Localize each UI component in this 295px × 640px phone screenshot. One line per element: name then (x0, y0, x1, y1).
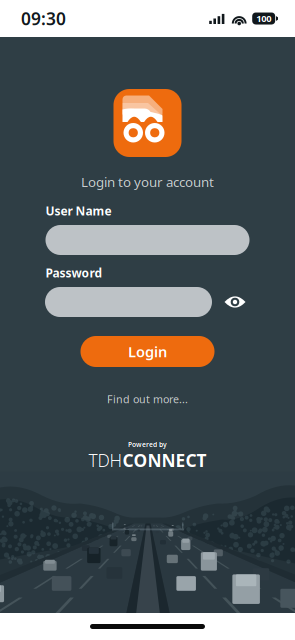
staticText: TDH (88, 449, 122, 472)
staticText: Password (45, 265, 102, 281)
staticText: Find out more... (107, 392, 188, 406)
staticText: 09:30 (21, 7, 66, 30)
button[interactable]: Login (80, 336, 214, 367)
button[interactable]: Find out more... (107, 392, 188, 406)
staticText: Login to your account (81, 173, 214, 191)
staticText: User Name (45, 203, 111, 219)
staticText: Powered by (128, 440, 167, 449)
staticText: CONNECT (122, 449, 206, 472)
button[interactable]: Show password (220, 287, 250, 317)
staticText: 100 (256, 12, 271, 25)
staticText: Login (128, 342, 167, 361)
